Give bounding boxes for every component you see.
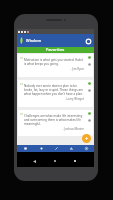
button[interactable]: Favorite [87,111,92,116]
staticText: - Jim Ryun [24,67,84,71]
staticText: - Joshua Marine [24,127,84,131]
button[interactable]: More options [87,88,92,93]
staticText: Wisdom [26,38,42,43]
button[interactable]: Add [79,145,94,152]
button[interactable]: Home [17,145,33,152]
button[interactable]: More options [87,118,92,123]
button[interactable]: Favorite [87,55,92,60]
staticText: Challenges are what make life interestin… [24,114,84,126]
button[interactable]: Challenges are what make life interestin… [18,110,93,136]
button[interactable]: Edit [49,145,64,152]
button[interactable]: Nobody ever wrote down a plan to be brok… [18,80,93,107]
button[interactable]: Categories [33,145,49,152]
staticText: Nobody ever wrote down a plan to be brok… [24,84,84,96]
button[interactable]: Add quote [82,134,91,143]
button[interactable]: More options [87,62,92,67]
button[interactable]: Favorite [87,81,92,86]
button[interactable]: Motivation is what gets you started. Hab… [18,54,93,77]
staticText: - Larry Winget [24,97,84,101]
staticText: Favorites [46,47,65,53]
staticText: Motivation is what gets you started. Hab… [24,58,84,66]
button[interactable]: Settings [83,36,93,46]
button[interactable]: Favorites [17,47,94,53]
button[interactable]: Favorites [64,145,79,152]
